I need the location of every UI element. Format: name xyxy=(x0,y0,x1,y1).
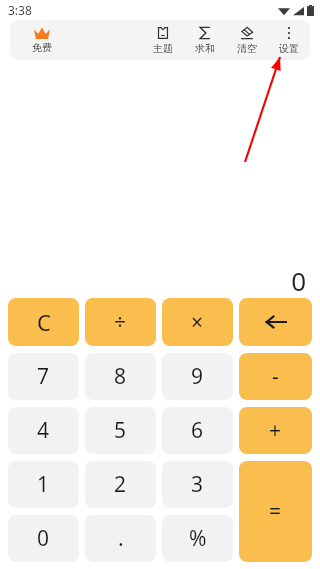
button[interactable]: 免费 xyxy=(10,20,74,60)
button[interactable]: 2 xyxy=(85,461,156,508)
button[interactable]: 5 xyxy=(85,407,156,454)
staticText: 4 xyxy=(37,416,50,445)
button[interactable]: 8 xyxy=(85,353,156,400)
staticText: 5 xyxy=(114,416,127,445)
button[interactable]: 1 xyxy=(8,461,79,508)
button[interactable]: 求和 xyxy=(184,20,226,60)
button[interactable]: × xyxy=(162,298,233,346)
staticText: 求和 xyxy=(195,42,215,55)
staticText: 8 xyxy=(114,362,127,391)
staticText: ÷ xyxy=(114,308,127,337)
button[interactable]: + xyxy=(239,407,312,454)
button[interactable]: 3 xyxy=(162,461,233,508)
button[interactable]: ÷ xyxy=(85,298,156,346)
staticText: 主题 xyxy=(153,42,173,55)
button[interactable]: % xyxy=(162,515,233,562)
button[interactable]: C xyxy=(8,298,79,346)
button[interactable]: More options xyxy=(268,20,310,60)
button[interactable]: 6 xyxy=(162,407,233,454)
staticText: 0 xyxy=(291,263,306,298)
staticText: 清空 xyxy=(237,42,257,55)
staticText: 设置 xyxy=(279,42,299,55)
button[interactable]: 清空 xyxy=(226,20,268,60)
staticText: 3 xyxy=(191,470,204,499)
staticText: 2 xyxy=(114,470,127,499)
staticText: 6 xyxy=(191,416,204,445)
staticText: 免费 xyxy=(32,41,52,54)
button[interactable]: = xyxy=(239,461,312,562)
button[interactable]: - xyxy=(239,353,312,400)
staticText: % xyxy=(189,524,207,553)
button[interactable]: 9 xyxy=(162,353,233,400)
staticText: 1 xyxy=(37,470,50,499)
staticText: + xyxy=(269,416,282,445)
staticText: 0 xyxy=(37,524,50,553)
button[interactable]: 7 xyxy=(8,353,79,400)
staticText: C xyxy=(37,307,51,337)
staticText: - xyxy=(272,362,279,391)
button[interactable]: 0 xyxy=(8,515,79,562)
button[interactable]: Backspace xyxy=(239,298,312,346)
staticText: × xyxy=(191,308,204,337)
button[interactable]: 主题 xyxy=(142,20,184,60)
staticText: 7 xyxy=(37,362,50,391)
button[interactable]: 4 xyxy=(8,407,79,454)
staticText: 3:38 xyxy=(8,2,32,18)
staticText: 9 xyxy=(191,362,204,391)
staticText: = xyxy=(269,497,282,526)
other: More options xyxy=(282,26,296,40)
staticText: . xyxy=(118,524,124,553)
button[interactable]: . xyxy=(85,515,156,562)
